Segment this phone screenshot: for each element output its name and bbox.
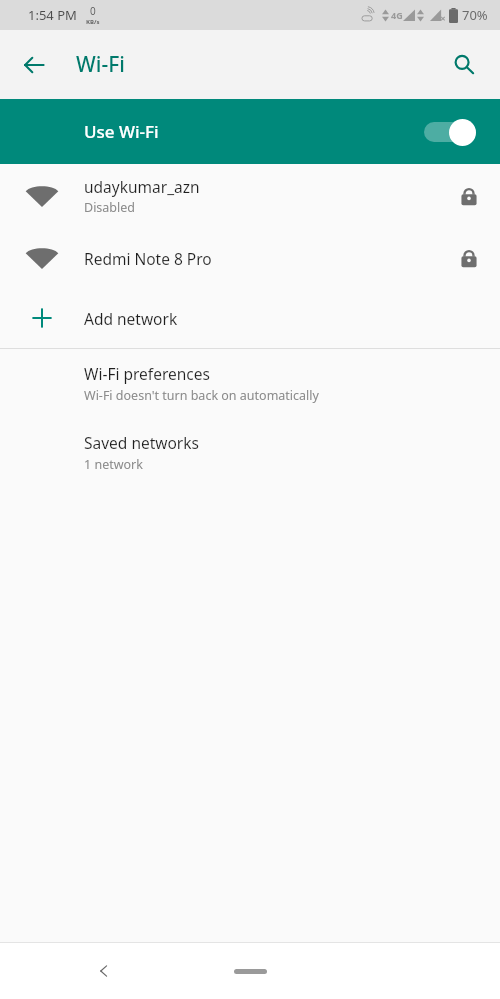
staticText: 1 network — [84, 456, 143, 473]
staticText: udaykumar_azn — [84, 176, 200, 197]
staticText: Saved networks — [84, 432, 199, 453]
button[interactable]: Saved networks — [0, 418, 500, 487]
staticText: 1:54 PM — [28, 6, 77, 24]
button[interactable]: Redmi Note 8 Pro — [0, 228, 500, 288]
button[interactable]: Use Wi-Fi — [0, 99, 500, 164]
staticText: Wi-Fi doesn't turn back on automatically — [84, 387, 319, 404]
button[interactable]: Search — [440, 41, 488, 89]
staticText: Redmi Note 8 Pro — [84, 248, 212, 269]
staticText: Use Wi-Fi — [84, 120, 159, 143]
staticText: KB/s — [86, 18, 100, 26]
button[interactable]: Back — [82, 949, 126, 993]
staticText: 70% — [462, 6, 488, 24]
staticText: 0 — [90, 4, 96, 18]
button[interactable]: Back — [10, 41, 58, 89]
staticText: Wi-Fi preferences — [84, 363, 210, 384]
staticText: Add network — [84, 308, 178, 329]
button[interactable]: Wi-Fi preferences — [0, 349, 500, 418]
button[interactable]: Home — [205, 955, 295, 987]
staticText: Wi-Fi — [76, 50, 125, 79]
staticText: 4G — [391, 9, 403, 21]
button[interactable]: Add network — [0, 288, 500, 348]
button[interactable]: udaykumar_azn — [0, 164, 500, 228]
staticText: Disabled — [84, 199, 136, 216]
